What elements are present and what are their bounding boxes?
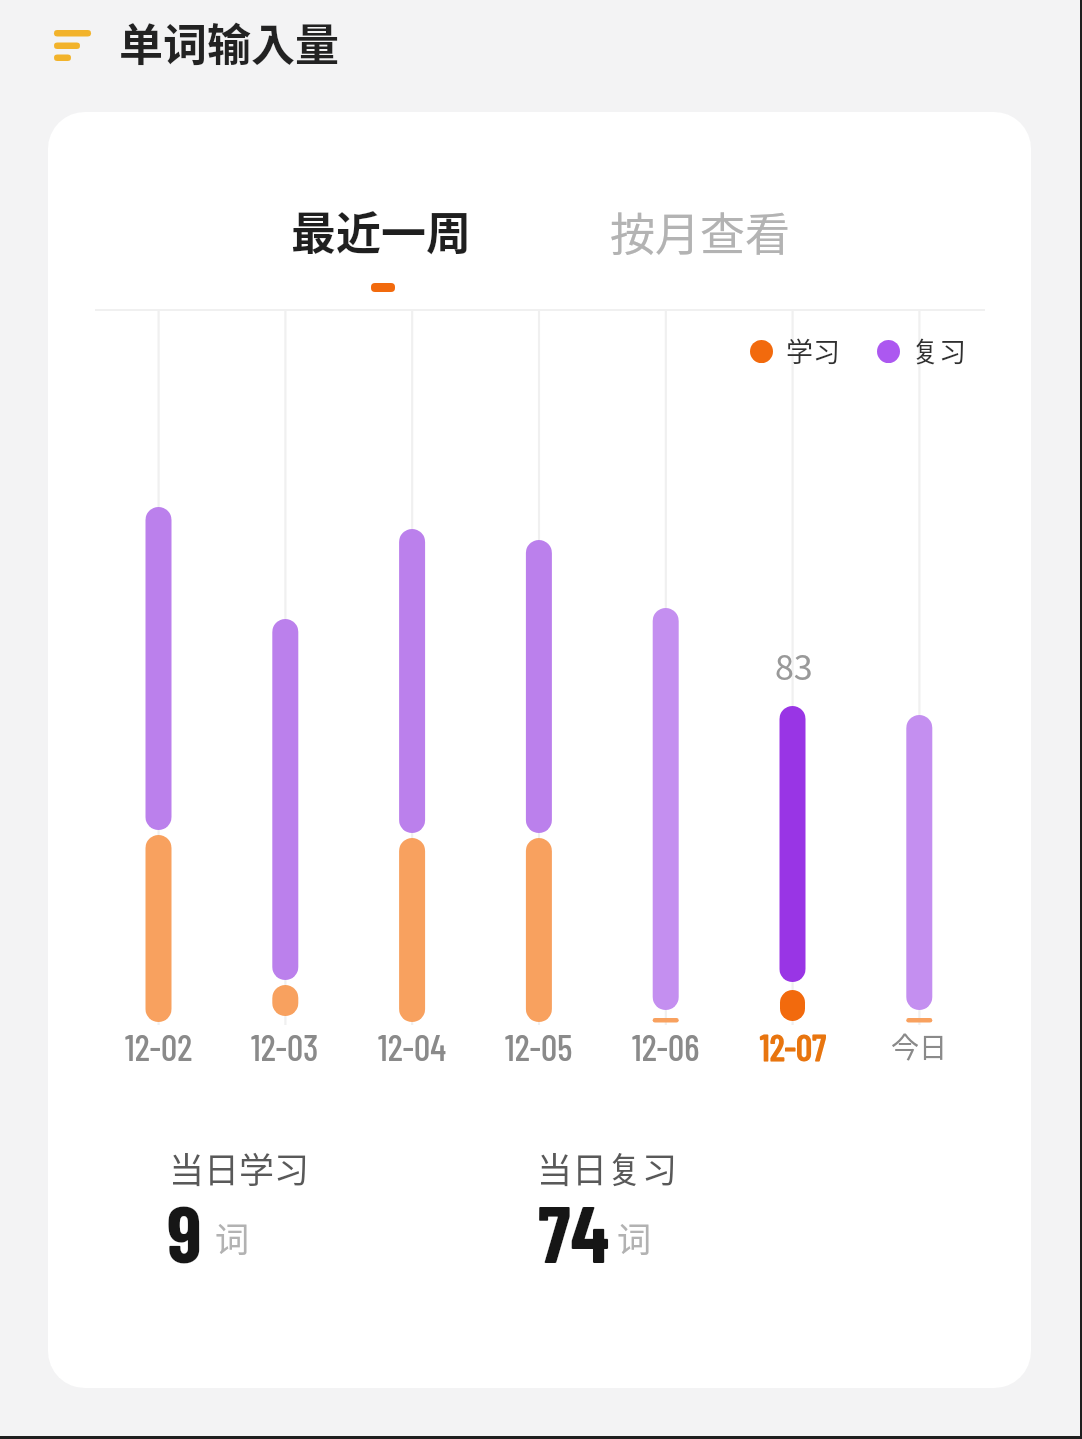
- button[interactable]: [730, 311, 856, 1068]
- button[interactable]: [222, 311, 348, 1068]
- staticText: 9: [167, 1183, 202, 1279]
- button[interactable]: [476, 311, 602, 1068]
- button[interactable]: [598, 182, 798, 297]
- staticText: 词: [215, 1213, 249, 1262]
- staticText: 当日学习: [169, 1142, 310, 1193]
- staticText: 单词输入量: [119, 10, 339, 74]
- staticText: 词: [617, 1213, 651, 1262]
- staticText: 74: [538, 1183, 610, 1279]
- staticText: 按月查看: [610, 199, 791, 264]
- staticText: 学习: [786, 331, 840, 370]
- button[interactable]: [856, 311, 982, 1068]
- button[interactable]: [278, 182, 478, 297]
- button[interactable]: [349, 311, 475, 1068]
- staticText: 今日: [891, 1026, 948, 1067]
- staticText: 12-03: [251, 1025, 319, 1068]
- staticText: 12-07: [760, 1025, 826, 1068]
- staticText: 12-06: [632, 1025, 700, 1068]
- staticText: 当日复习: [537, 1142, 678, 1193]
- staticText: 12-02: [125, 1025, 193, 1068]
- staticText: 最近一周: [291, 198, 472, 263]
- staticText: 复习: [912, 331, 966, 370]
- staticText: 12-05: [505, 1025, 573, 1068]
- button[interactable]: [603, 311, 729, 1068]
- staticText: 83: [775, 641, 813, 690]
- staticText: 12-04: [378, 1025, 447, 1068]
- button[interactable]: [96, 311, 222, 1068]
